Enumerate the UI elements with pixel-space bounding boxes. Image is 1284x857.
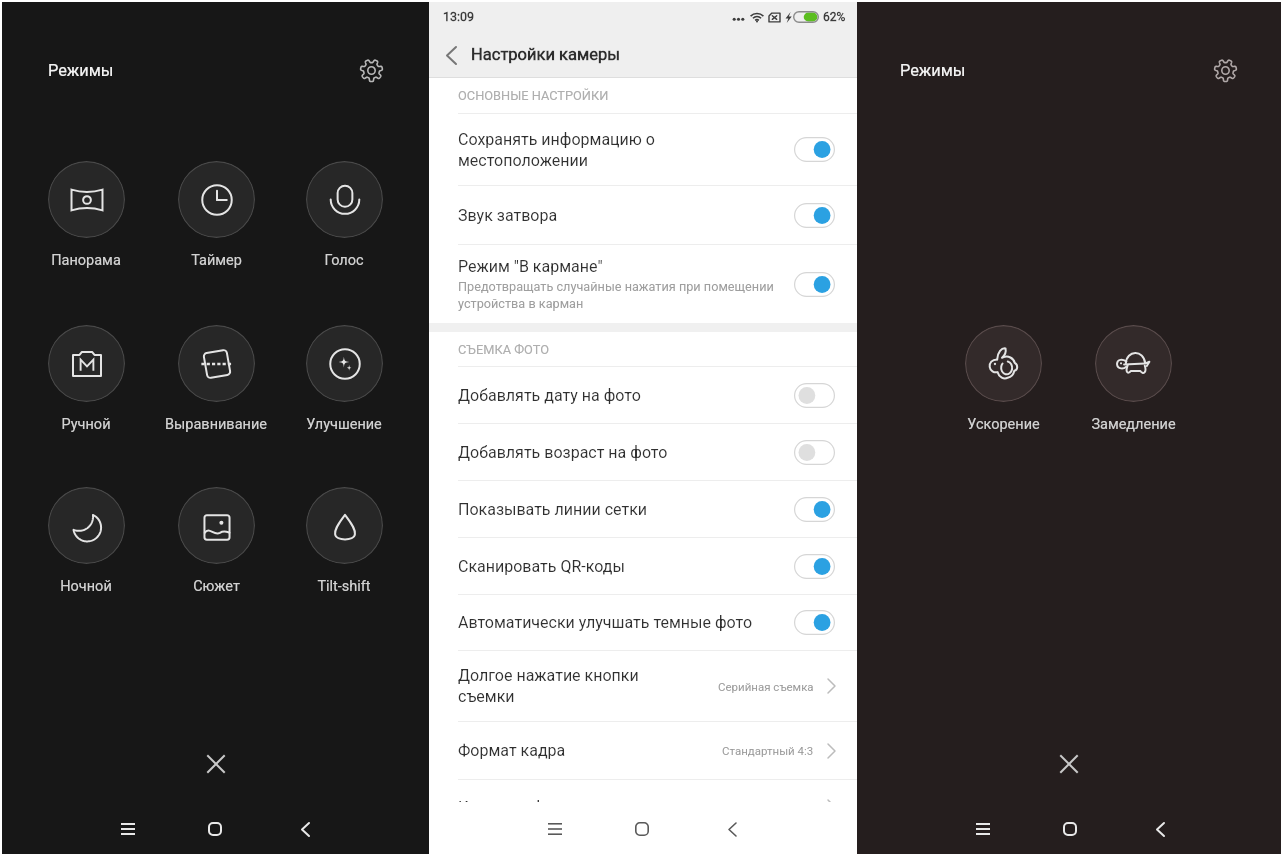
staticText: Автоматически улучшать темные фото [458, 613, 794, 632]
button[interactable]: Back [436, 40, 466, 70]
staticText: Серийная съемка [718, 680, 814, 693]
button[interactable]: Off [794, 440, 835, 465]
staticText: Качество фото [458, 798, 766, 817]
staticText: Улучшение [306, 416, 382, 433]
staticText: Предотвращать случайные нажатия при поме… [458, 279, 774, 311]
button[interactable]: Home [620, 803, 664, 855]
staticText: Выравнивание [165, 416, 267, 433]
staticText: Формат кадра [458, 741, 722, 760]
button[interactable]: Close [1049, 744, 1089, 784]
button[interactable]: Menu [106, 803, 150, 855]
button[interactable]: On [794, 610, 835, 635]
button[interactable]: On [794, 203, 835, 228]
button[interactable]: Таймер [154, 161, 278, 269]
button[interactable]: Качество фото [429, 780, 857, 802]
button[interactable]: Добавлять дату на фото [429, 367, 857, 423]
button[interactable]: Menu [961, 803, 1005, 855]
button[interactable]: Сохранять информацию о местоположении [429, 114, 857, 185]
staticText: Добавлять дату на фото [458, 386, 794, 405]
button[interactable]: Home [193, 803, 237, 855]
button[interactable]: Долгое нажатие кнопки съемки [429, 651, 857, 721]
button[interactable]: Back [1138, 803, 1182, 855]
staticText: Tilt-shift [317, 578, 371, 595]
button[interactable]: Сюжет [154, 487, 278, 595]
staticText: Добавлять возраст на фото [458, 443, 794, 462]
staticText: Сохранять информацию о местоположении [458, 130, 794, 170]
staticText: Замедление [1091, 416, 1176, 433]
button[interactable]: On [794, 137, 835, 162]
button[interactable]: Settings [356, 55, 386, 85]
staticText: Голос [324, 252, 364, 269]
button[interactable]: Back [283, 803, 327, 855]
staticText: Ускорение [967, 416, 1040, 433]
button[interactable]: Back [710, 803, 754, 855]
button[interactable]: Close [196, 744, 236, 784]
staticText: ОСНОВНЫЕ НАСТРОЙКИ [458, 88, 609, 103]
button[interactable]: Звук затвора [429, 186, 857, 244]
staticText: 13:09 [443, 9, 475, 24]
button[interactable]: Off [794, 383, 835, 408]
button[interactable]: Ручной [24, 325, 148, 433]
button[interactable]: Home [1048, 803, 1092, 855]
button[interactable]: Добавлять возраст на фото [429, 424, 857, 480]
button[interactable]: Режим "В кармане" [429, 245, 857, 323]
staticText: Показывать линии сетки [458, 500, 794, 519]
staticText: Режим "В кармане" [458, 257, 603, 276]
staticText: Ночной [60, 578, 112, 595]
staticText: Сканировать QR-коды [458, 557, 794, 576]
button[interactable]: Menu [533, 803, 577, 855]
button[interactable]: Tilt-shift [282, 487, 406, 595]
staticText: Долгое нажатие кнопки съемки [458, 666, 718, 706]
button[interactable]: Ускорение [941, 325, 1065, 433]
button[interactable]: Ночной [24, 487, 148, 595]
button[interactable]: Формат кадра [429, 722, 857, 779]
button[interactable]: Выравнивание [154, 325, 278, 433]
button[interactable]: On [794, 554, 835, 579]
staticText: Панорама [51, 252, 121, 269]
button[interactable]: On [794, 272, 835, 297]
staticText: Стандартный 4:3 [722, 744, 814, 757]
button[interactable]: Голос [282, 161, 406, 269]
button[interactable]: Сканировать QR-коды [429, 538, 857, 594]
button[interactable]: Замедление [1071, 325, 1195, 433]
staticText: Настройки камеры [471, 45, 621, 64]
button[interactable]: On [794, 497, 835, 522]
staticText: Режимы [900, 61, 966, 80]
staticText: Сюжет [193, 578, 240, 595]
staticText: Таймер [191, 252, 242, 269]
staticText: Ручной [61, 416, 111, 433]
staticText: Режимы [48, 61, 114, 80]
button[interactable]: Показывать линии сетки [429, 481, 857, 537]
button[interactable]: Улучшение [282, 325, 406, 433]
staticText: Звук затвора [458, 206, 794, 225]
staticText: 62% [823, 10, 846, 24]
button[interactable]: Панорама [24, 161, 148, 269]
button[interactable]: Settings [1210, 55, 1240, 85]
button[interactable]: Автоматически улучшать темные фото [429, 595, 857, 650]
staticText: СЪЕМКА ФОТО [458, 342, 550, 357]
